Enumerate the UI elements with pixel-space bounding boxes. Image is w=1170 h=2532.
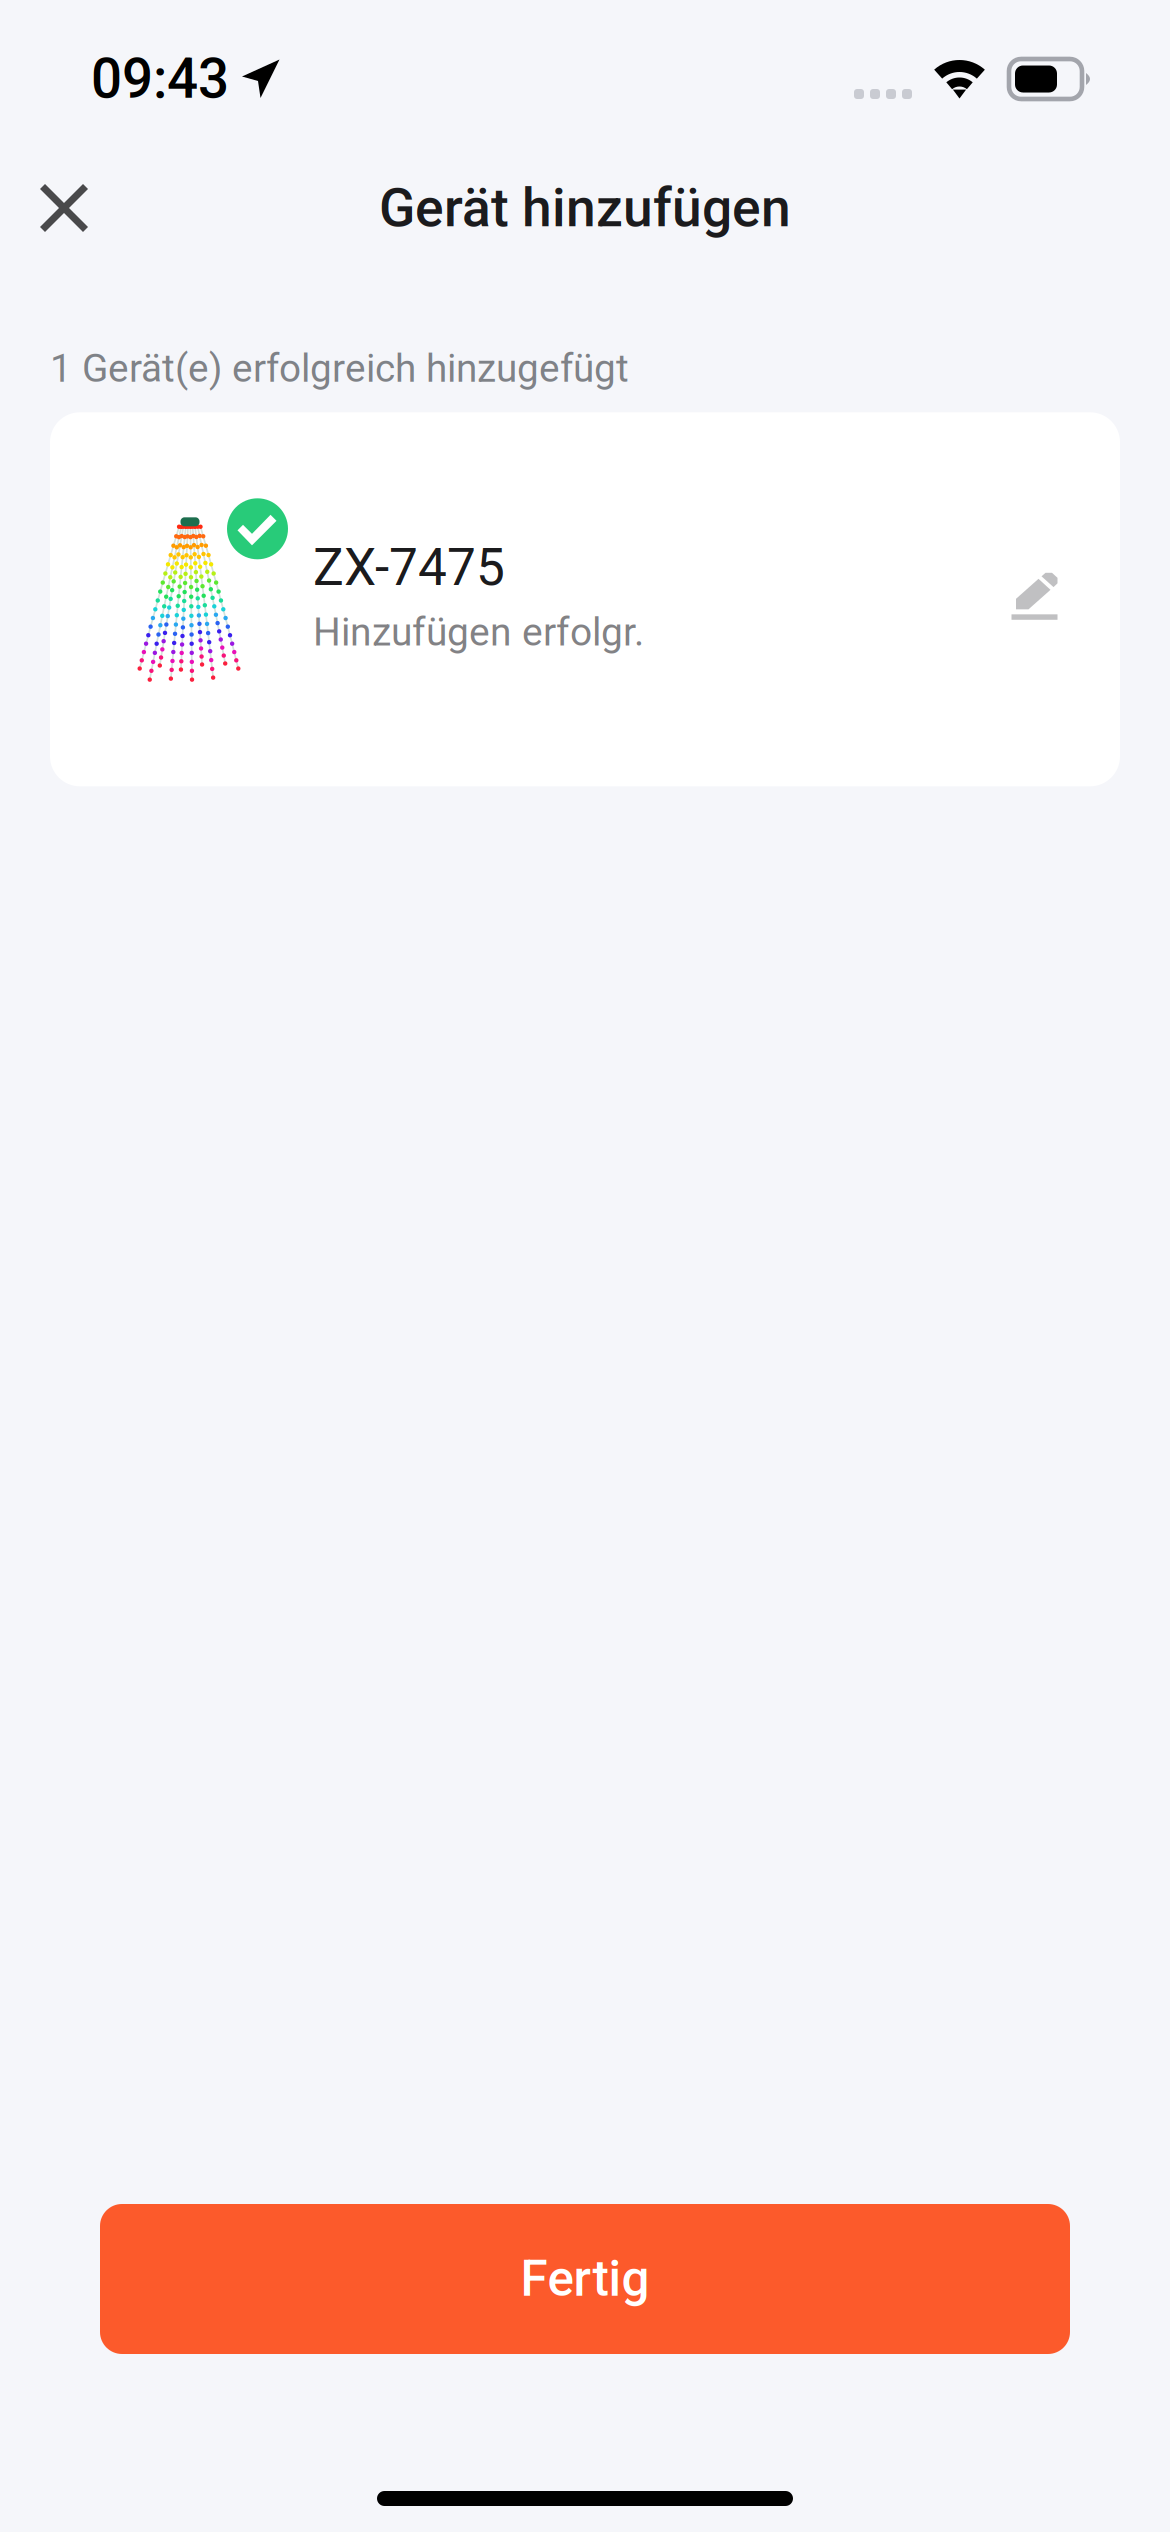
staticText: Gerät hinzufügen bbox=[379, 177, 791, 239]
button[interactable]: Fertig bbox=[100, 2204, 1070, 2354]
staticText: 1 Gerät(e) erfolgreich hinzugefügt bbox=[50, 346, 629, 391]
button[interactable]: Gerät umbenennen bbox=[993, 554, 1077, 638]
staticText: Hinzufügen erfolgr. bbox=[313, 609, 644, 655]
button[interactable]: Schließen bbox=[19, 163, 109, 253]
staticText: Fertig bbox=[520, 2250, 649, 2308]
staticText: 09:43 bbox=[91, 47, 229, 111]
staticText: ZX-7475 bbox=[313, 537, 505, 597]
